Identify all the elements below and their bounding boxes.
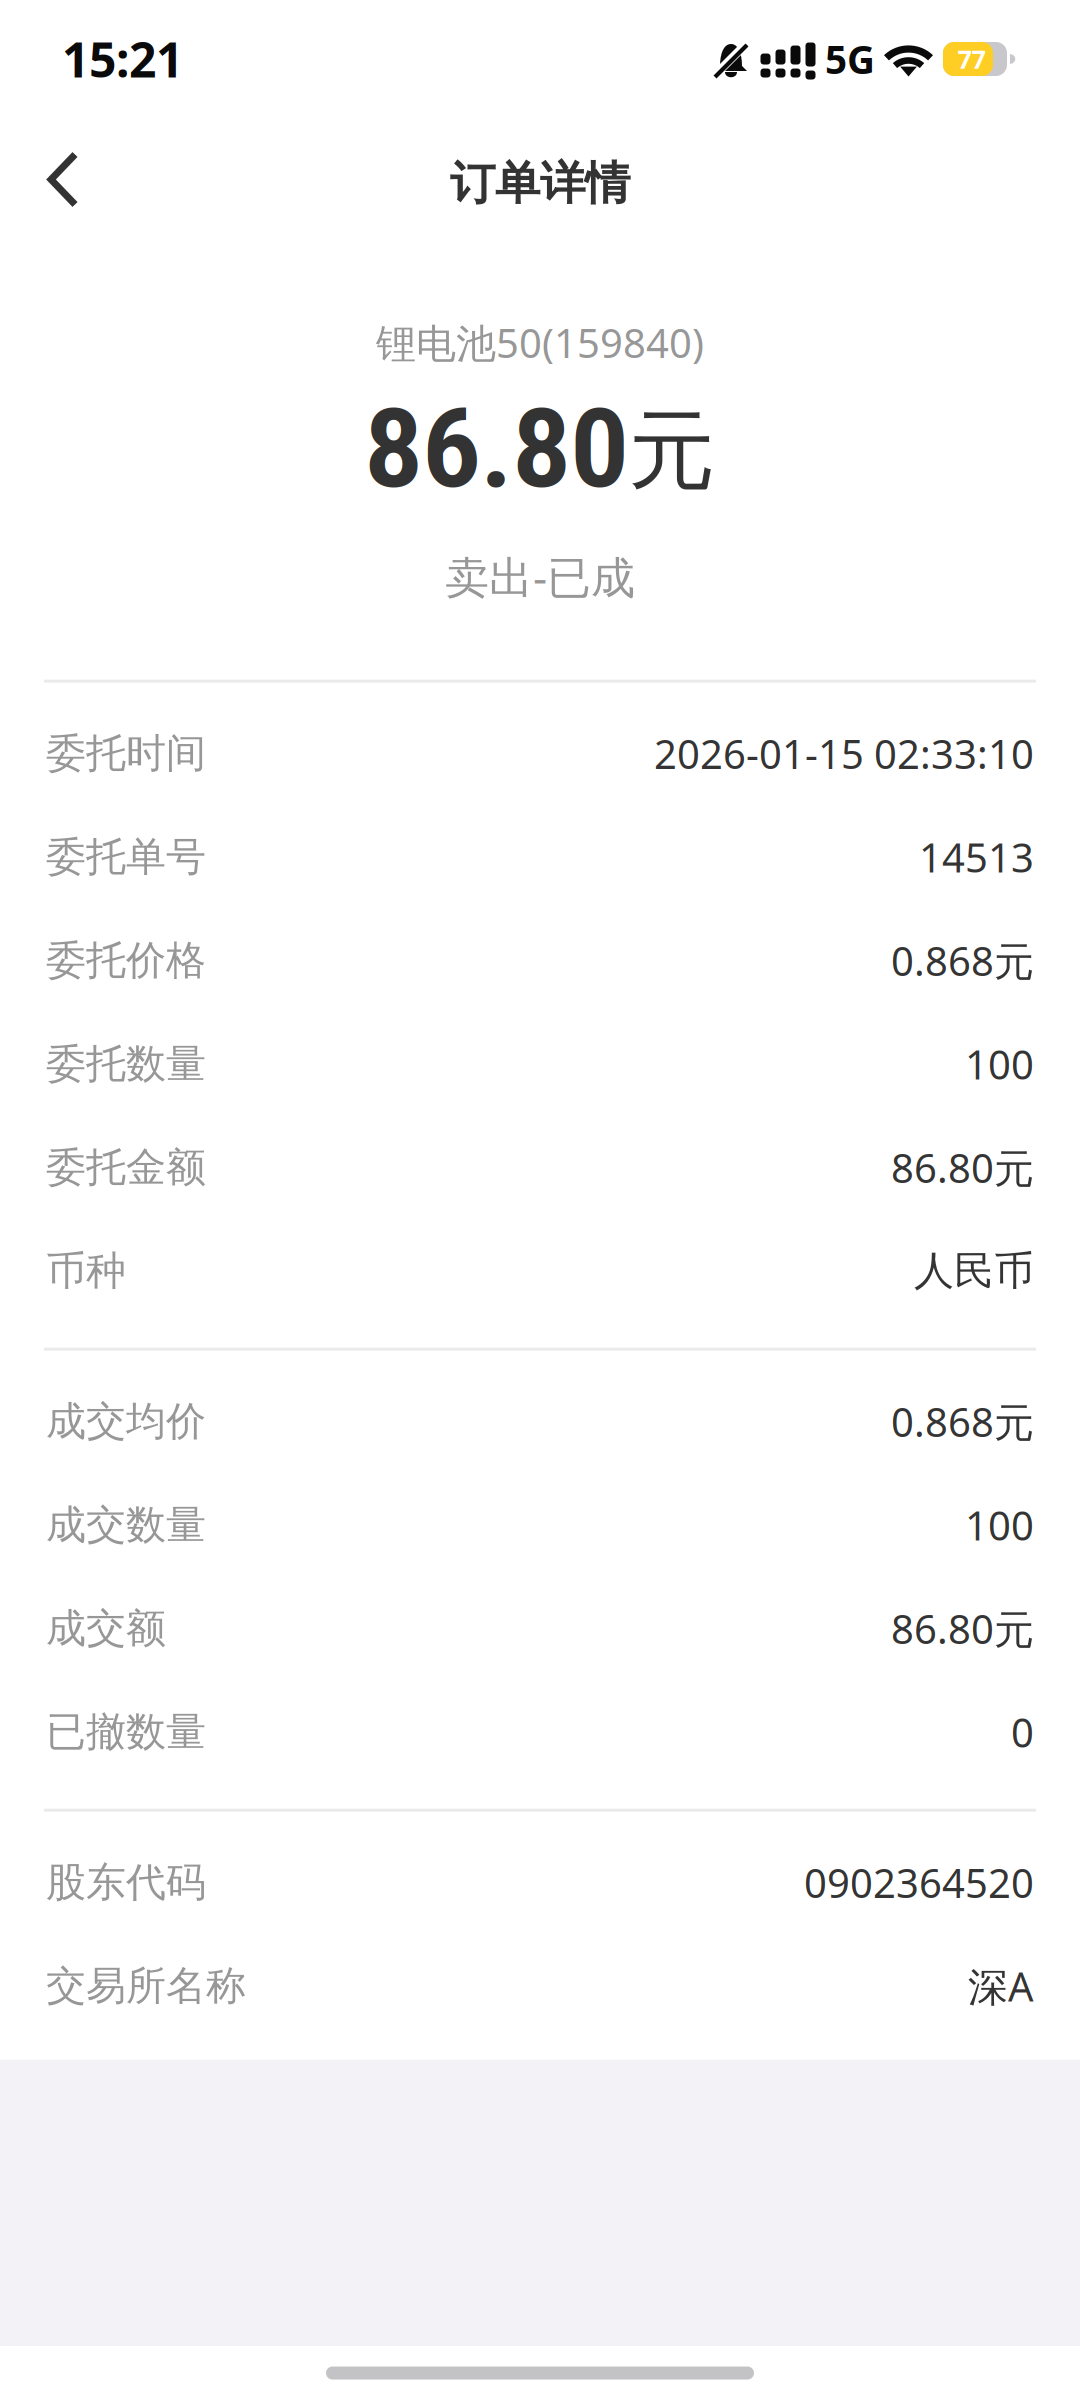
staticText: 人民币 — [914, 1246, 1034, 1295]
staticText: 成交均价 — [46, 1397, 206, 1446]
staticText: 元 — [628, 398, 715, 504]
staticText: 委托单号 — [46, 832, 206, 881]
staticText: 成交额 — [46, 1604, 166, 1653]
staticText: 成交数量 — [46, 1500, 206, 1549]
staticText: 卖出-已成 — [445, 547, 635, 606]
staticText: 委托时间 — [46, 729, 206, 778]
button[interactable]: Back — [0, 124, 126, 242]
staticText: 2026-01-15 02:33:10 — [654, 727, 1034, 780]
staticText: 币种 — [46, 1246, 126, 1295]
staticText: 委托数量 — [46, 1039, 206, 1088]
staticText: 14513 — [919, 830, 1034, 883]
staticText: 股东代码 — [46, 1858, 206, 1907]
staticText: 已撤数量 — [46, 1707, 206, 1756]
staticText: 86.80元 — [891, 1602, 1034, 1655]
staticText: 深A — [968, 1959, 1034, 2012]
staticText: 委托价格 — [46, 936, 206, 985]
staticText: 86.80元 — [891, 1141, 1034, 1194]
staticText: 交易所名称 — [46, 1961, 246, 2010]
staticText: 100 — [965, 1498, 1034, 1551]
staticText: 86.80 — [364, 385, 628, 513]
staticText: 5G — [825, 33, 875, 85]
staticText: 0.868元 — [891, 1395, 1034, 1448]
staticText: 锂电池50(159840) — [376, 316, 704, 369]
staticText: 订单详情 — [450, 156, 630, 211]
staticText: 委托金额 — [46, 1143, 206, 1192]
staticText: 100 — [965, 1037, 1034, 1090]
staticText: 0 — [1011, 1705, 1034, 1758]
staticText: 0.868元 — [891, 934, 1034, 987]
staticText: 15:21 — [62, 27, 183, 91]
staticText: 77 — [957, 42, 985, 76]
staticText: 0902364520 — [804, 1856, 1034, 1909]
